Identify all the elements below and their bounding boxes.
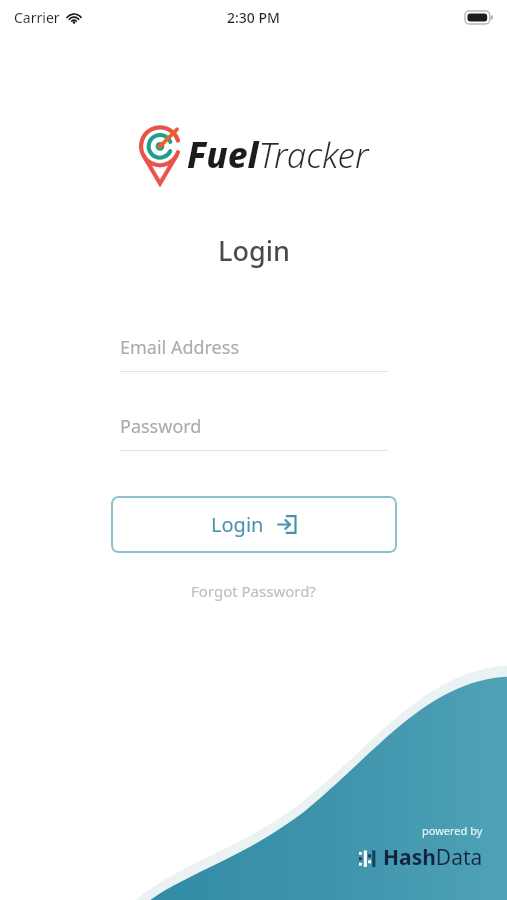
staticText: powered by	[422, 823, 483, 838]
staticText: Login	[218, 232, 290, 269]
staticText: Password	[120, 414, 202, 439]
other: Wi-Fi signal	[66, 11, 82, 24]
staticText: FuelTracker	[187, 131, 369, 179]
staticText: Email Address	[120, 335, 240, 360]
button[interactable]: Email Address	[120, 335, 388, 372]
staticText: Carrier	[14, 8, 60, 27]
button[interactable]: Forgot Password?	[181, 577, 326, 605]
staticText: Forgot Password?	[191, 581, 316, 601]
staticText: 2:30 PM	[227, 8, 280, 27]
button[interactable]: Password	[120, 414, 388, 451]
other: Battery full	[465, 11, 493, 24]
staticText: Login	[211, 511, 264, 538]
button[interactable]: Login	[111, 496, 397, 553]
staticText: HashData	[383, 843, 483, 872]
